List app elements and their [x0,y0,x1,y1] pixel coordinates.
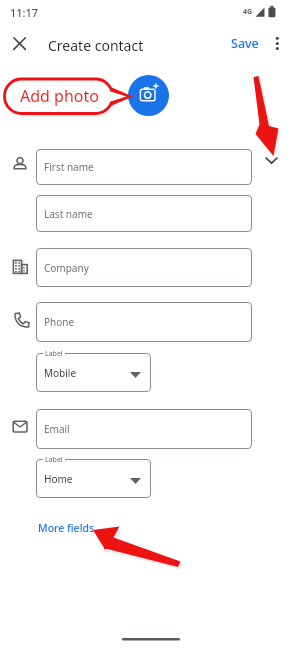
staticText: Phone [44,315,75,329]
button[interactable]: Company [36,248,252,287]
button[interactable]: Last name [36,195,252,232]
staticText: Save [231,35,259,52]
staticText: Label [45,455,63,465]
button[interactable]: Mobile [36,353,151,392]
staticText: Home [44,472,73,486]
staticText: 4G [243,7,253,17]
button[interactable] [128,75,169,116]
staticText: Add photo [20,85,99,107]
button[interactable]: Save [224,30,266,57]
staticText: Email [44,422,70,436]
staticText: Create contact [48,36,144,55]
staticText: More fields [38,521,95,535]
staticText: 11:17 [10,5,39,20]
staticText: Label [45,349,63,359]
staticText: Mobile [44,366,77,380]
staticText: Last name [44,207,93,221]
button[interactable] [6,30,36,57]
button[interactable]: First name [36,149,252,185]
button[interactable] [266,30,290,57]
staticText: Company [44,261,89,275]
button[interactable] [259,148,283,174]
button[interactable]: More fields [38,521,95,535]
staticText: First name [44,160,94,174]
button[interactable]: Home [36,459,151,498]
button[interactable]: Email [36,409,252,449]
button[interactable]: Phone [36,302,252,342]
